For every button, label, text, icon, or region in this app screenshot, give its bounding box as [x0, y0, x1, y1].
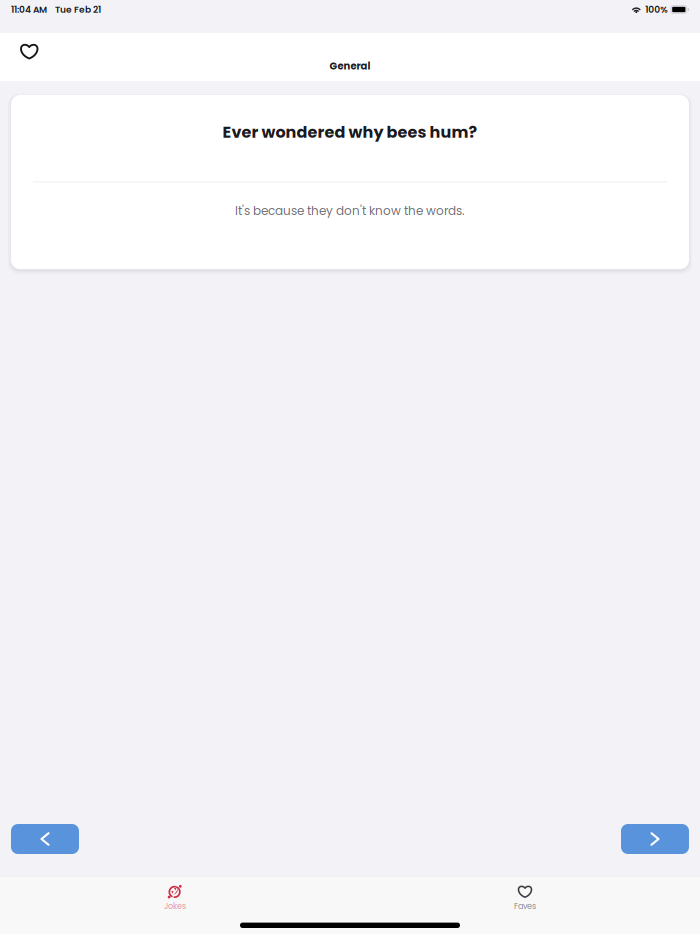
button[interactable]: Faves [350, 876, 700, 912]
staticText: General [329, 59, 370, 73]
staticText: Tue Feb 21 [55, 3, 101, 16]
staticText: It's because they don't know the words. [235, 202, 465, 219]
button[interactable]: Previous joke [11, 824, 79, 854]
staticText: 100% [645, 3, 668, 16]
staticText: 11:04 AM [11, 3, 47, 16]
button[interactable]: Favorites [0, 33, 50, 69]
staticText: Jokes [164, 900, 186, 912]
staticText: Faves [514, 900, 536, 912]
button[interactable]: Next joke [621, 824, 689, 854]
staticText: Ever wondered why bees hum? [222, 121, 477, 143]
button[interactable]: Jokes [0, 876, 350, 912]
